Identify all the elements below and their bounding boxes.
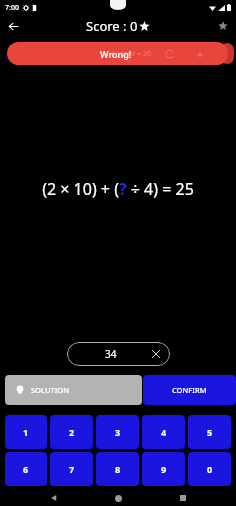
staticText: CONFIRM [172,385,207,395]
button[interactable]: 34 [67,342,170,366]
staticText: 8 [115,463,121,475]
button[interactable]: 7 [50,452,93,486]
button[interactable]: Clear [149,347,163,361]
staticText: 1 [23,426,29,438]
button[interactable]: 4 [142,415,185,449]
staticText: 3 [115,426,121,438]
staticText: 7:00 [5,3,19,13]
staticText: Answer = 20 [111,49,152,59]
button[interactable]: SOLUTION [5,375,142,405]
button[interactable]: Recent apps [172,490,194,506]
button[interactable]: CONFIRM [143,375,236,405]
staticText: (2 × 10) + (? ÷ 4) = 25 [42,178,194,200]
staticText: 5 [207,426,213,438]
button[interactable]: Back [43,490,65,506]
button[interactable]: 3 [96,415,139,449]
staticText: Score : 0 [86,17,138,35]
button[interactable]: 9 [142,452,185,486]
button[interactable]: Favorites [214,17,232,35]
button[interactable]: 1 [5,415,47,449]
staticText: 4 [161,426,167,438]
button[interactable]: Back [3,16,23,36]
staticText: 2 [69,426,75,438]
staticText: 7 [69,463,75,475]
button[interactable]: 0 [188,452,231,486]
button[interactable]: 8 [96,452,139,486]
staticText: 34 [105,347,117,361]
button[interactable]: Answer = 20 [7,42,228,65]
button[interactable]: 2 [50,415,93,449]
staticText: Wrong! [100,48,132,60]
button[interactable]: 5 [188,415,231,449]
staticText: SOLUTION [31,385,70,395]
button[interactable]: Home [107,490,129,506]
button[interactable]: 6 [5,452,47,486]
staticText: 9 [161,463,167,475]
staticText: 6 [23,463,29,475]
staticText: 0 [207,463,213,475]
